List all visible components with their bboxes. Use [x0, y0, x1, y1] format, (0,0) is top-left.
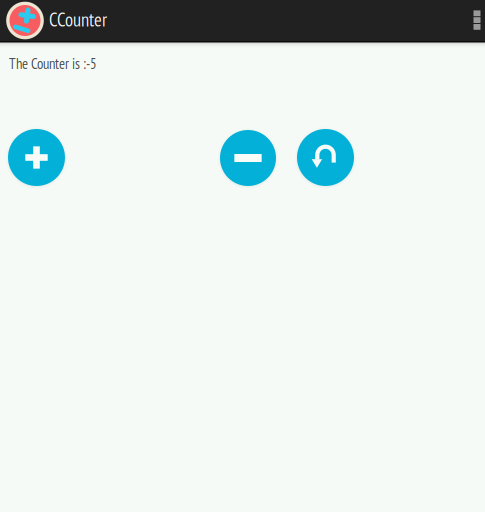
- button[interactable]: Reset: [297, 129, 354, 186]
- button[interactable]: Decrement: [220, 130, 276, 186]
- button[interactable]: CCounter: [0, 0, 160, 41]
- staticText: CCounter: [49, 7, 107, 32]
- button[interactable]: More options: [462, 0, 485, 41]
- staticText: The Counter is :-5: [9, 54, 97, 73]
- button[interactable]: Increment: [8, 129, 65, 186]
